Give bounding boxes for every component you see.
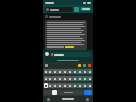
button[interactable]: Key bbox=[82, 83, 87, 88]
button[interactable]: Attach bbox=[45, 52, 49, 56]
button[interactable]: Key bbox=[72, 69, 77, 74]
button[interactable]: Key bbox=[67, 76, 72, 81]
button[interactable]: Key bbox=[52, 69, 57, 74]
button[interactable]: Back bbox=[47, 98, 50, 101]
button[interactable]: Key bbox=[62, 83, 67, 88]
button[interactable]: Enter bbox=[84, 90, 92, 95]
button[interactable]: Key bbox=[44, 69, 48, 74]
button[interactable]: Key bbox=[77, 76, 82, 81]
button[interactable]: Key bbox=[44, 76, 48, 81]
button[interactable]: Key bbox=[52, 76, 57, 81]
button[interactable]: Key bbox=[72, 83, 77, 88]
button[interactable]: Key bbox=[87, 83, 92, 88]
button[interactable]: Key bbox=[62, 69, 67, 74]
button[interactable]: Key bbox=[77, 83, 82, 88]
button[interactable] bbox=[45, 7, 73, 12]
button[interactable]: Emoji key bbox=[52, 90, 57, 95]
button[interactable]: Key bbox=[72, 76, 77, 81]
button[interactable]: Translate bbox=[83, 64, 86, 67]
button[interactable]: Key bbox=[82, 69, 87, 74]
button[interactable]: Recents bbox=[86, 98, 89, 101]
button[interactable]: Key bbox=[44, 83, 48, 88]
button[interactable]: Sticker bbox=[88, 64, 91, 67]
button[interactable]: Emoji bbox=[78, 64, 81, 67]
button[interactable]: Key bbox=[52, 83, 57, 88]
button[interactable]: Space bbox=[57, 90, 79, 95]
button[interactable]: Key bbox=[67, 69, 72, 74]
button[interactable]: Key bbox=[48, 76, 52, 81]
button[interactable] bbox=[50, 52, 91, 57]
button[interactable]: Key bbox=[62, 76, 67, 81]
button[interactable]: Key bbox=[87, 76, 92, 81]
button[interactable]: Home bbox=[62, 98, 74, 100]
button[interactable]: Compose bbox=[74, 7, 79, 12]
button[interactable]: Key bbox=[57, 69, 62, 74]
button[interactable]: Key bbox=[82, 76, 87, 81]
button[interactable]: Keyboard settings bbox=[45, 64, 48, 67]
button[interactable]: Key bbox=[57, 83, 62, 88]
button[interactable]: Key bbox=[67, 83, 72, 88]
button[interactable]: Key bbox=[57, 76, 62, 81]
button[interactable] bbox=[80, 7, 91, 11]
button[interactable]: Key bbox=[48, 69, 52, 74]
button[interactable]: Key bbox=[48, 83, 52, 88]
button[interactable]: Key bbox=[77, 69, 82, 74]
button[interactable] bbox=[45, 20, 87, 50]
button[interactable]: Key bbox=[87, 69, 92, 74]
